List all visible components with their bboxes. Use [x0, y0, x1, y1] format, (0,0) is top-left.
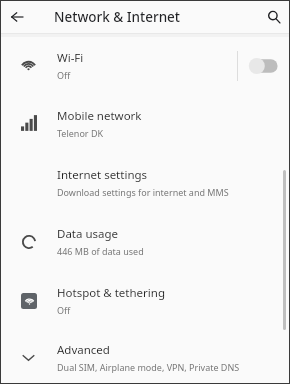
staticText: Telenor DK [57, 127, 104, 139]
staticText: Off [57, 69, 71, 81]
button[interactable]: Mobile network [0, 94, 290, 153]
staticText: Wi-Fi [57, 50, 84, 66]
button[interactable]: Advanced [0, 330, 290, 384]
button[interactable]: Back [0, 0, 33, 33]
button[interactable]: Internet settings [0, 153, 290, 212]
button[interactable]: Wi-Fi toggle [238, 46, 290, 86]
staticText: Advanced [57, 342, 110, 358]
staticText: Hotspot & tethering [57, 285, 165, 301]
staticText: Internet settings [57, 167, 148, 183]
staticText: Network & Internet [54, 8, 181, 26]
button[interactable]: Data usage [0, 212, 290, 271]
staticText: Download settings for internet and MMS [57, 186, 229, 198]
staticText: 446 MB of data used [57, 245, 144, 257]
staticText: Data usage [57, 226, 119, 242]
button[interactable]: Search [257, 0, 290, 33]
staticText: Mobile network [57, 108, 142, 124]
button[interactable]: Wi-Fi [0, 37, 290, 94]
staticText: Off [57, 304, 71, 316]
staticText: Dual SIM, Airplane mode, VPN, Private DN… [57, 361, 240, 373]
button[interactable]: Hotspot & tethering [0, 271, 290, 330]
